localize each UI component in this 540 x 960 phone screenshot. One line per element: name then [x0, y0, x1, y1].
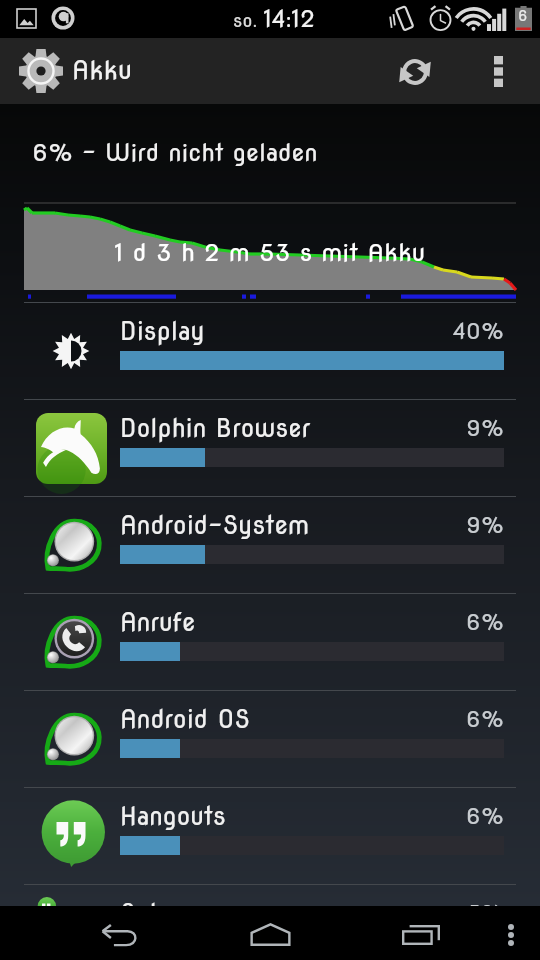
button[interactable]: Display: [0, 303, 540, 399]
staticText: Schwarzes...: [120, 898, 466, 919]
staticText: 9%: [465, 512, 504, 539]
staticText: 40%: [453, 318, 504, 345]
button[interactable]: Refresh: [381, 38, 449, 104]
staticText: 6%: [465, 803, 504, 830]
button[interactable]: Home: [220, 906, 320, 960]
staticText: so.: [233, 10, 258, 32]
button[interactable]: Dolphin Browser: [0, 400, 540, 496]
button[interactable]: Android-System: [0, 497, 540, 593]
staticText: 6: [518, 8, 528, 25]
staticText: Akku: [72, 55, 132, 85]
staticText: Android-System: [120, 510, 465, 540]
staticText: Android OS: [120, 704, 465, 734]
staticText: Anrufe: [120, 607, 465, 637]
button[interactable]: More options: [466, 38, 530, 104]
staticText: 6%: [465, 706, 504, 733]
staticText: 14:12: [264, 5, 316, 33]
staticText: Hangouts: [120, 801, 465, 831]
button[interactable]: Menu: [486, 906, 536, 960]
button[interactable]: Schwarzes...: [0, 885, 540, 906]
staticText: Display: [120, 316, 453, 346]
staticText: 1 d 3 h 2 m 53 s mit Akku: [115, 238, 425, 267]
button[interactable]: Anrufe: [0, 594, 540, 690]
button[interactable]: Hangouts: [0, 788, 540, 884]
button[interactable]: Recent apps: [371, 906, 471, 960]
staticText: Dolphin Browser: [120, 413, 465, 443]
staticText: 6%: [465, 609, 504, 636]
staticText: 5%: [466, 900, 504, 921]
button[interactable]: Android OS: [0, 691, 540, 787]
staticText: 6% - Wird nicht geladen: [32, 138, 318, 166]
button[interactable]: Akku: [19, 49, 132, 93]
button[interactable]: Back: [70, 906, 170, 960]
staticText: 9%: [465, 415, 504, 442]
